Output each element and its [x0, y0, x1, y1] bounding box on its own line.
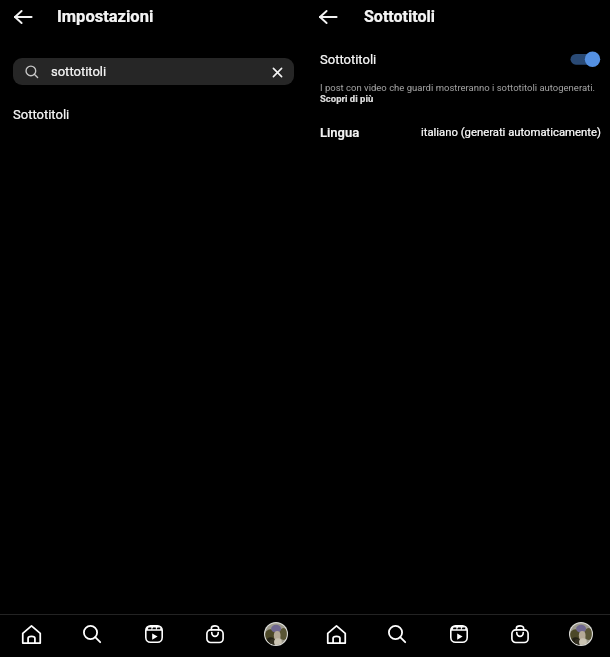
button[interactable]: Search — [367, 613, 427, 655]
button[interactable]: Lingua — [305, 118, 610, 146]
button[interactable]: Reels — [124, 613, 184, 655]
button[interactable]: Shop — [185, 613, 245, 655]
staticText: sottotitoli — [51, 64, 107, 79]
button[interactable]: Captions on — [569, 49, 601, 69]
button[interactable]: Home — [1, 613, 61, 655]
button[interactable]: Sottotitoli — [305, 45, 610, 73]
button[interactable]: Profile — [551, 614, 610, 654]
button[interactable]: Shop — [490, 613, 550, 655]
staticText: Sottotitoli — [364, 7, 435, 26]
button[interactable]: Reels — [429, 613, 489, 655]
button[interactable]: Search — [62, 613, 122, 655]
button[interactable]: Sottotitoli — [0, 100, 305, 128]
staticText: Impostazioni — [57, 7, 154, 26]
staticText: I post con video che guardi mostreranno … — [320, 82, 595, 93]
button[interactable]: Profile — [246, 614, 306, 654]
staticText: Sottotitoli — [320, 52, 377, 67]
staticText: italiano (generati automaticamente) — [421, 126, 601, 139]
button[interactable]: Back — [2, 0, 44, 34]
button[interactable]: sottotitoli — [13, 58, 294, 85]
staticText: Sottotitoli — [13, 107, 70, 122]
button[interactable]: Back — [307, 0, 349, 34]
staticText: Scopri di più — [320, 93, 374, 104]
button[interactable]: Home — [306, 613, 366, 655]
staticText: Lingua — [320, 125, 360, 140]
button[interactable]: Clear search — [264, 59, 290, 85]
